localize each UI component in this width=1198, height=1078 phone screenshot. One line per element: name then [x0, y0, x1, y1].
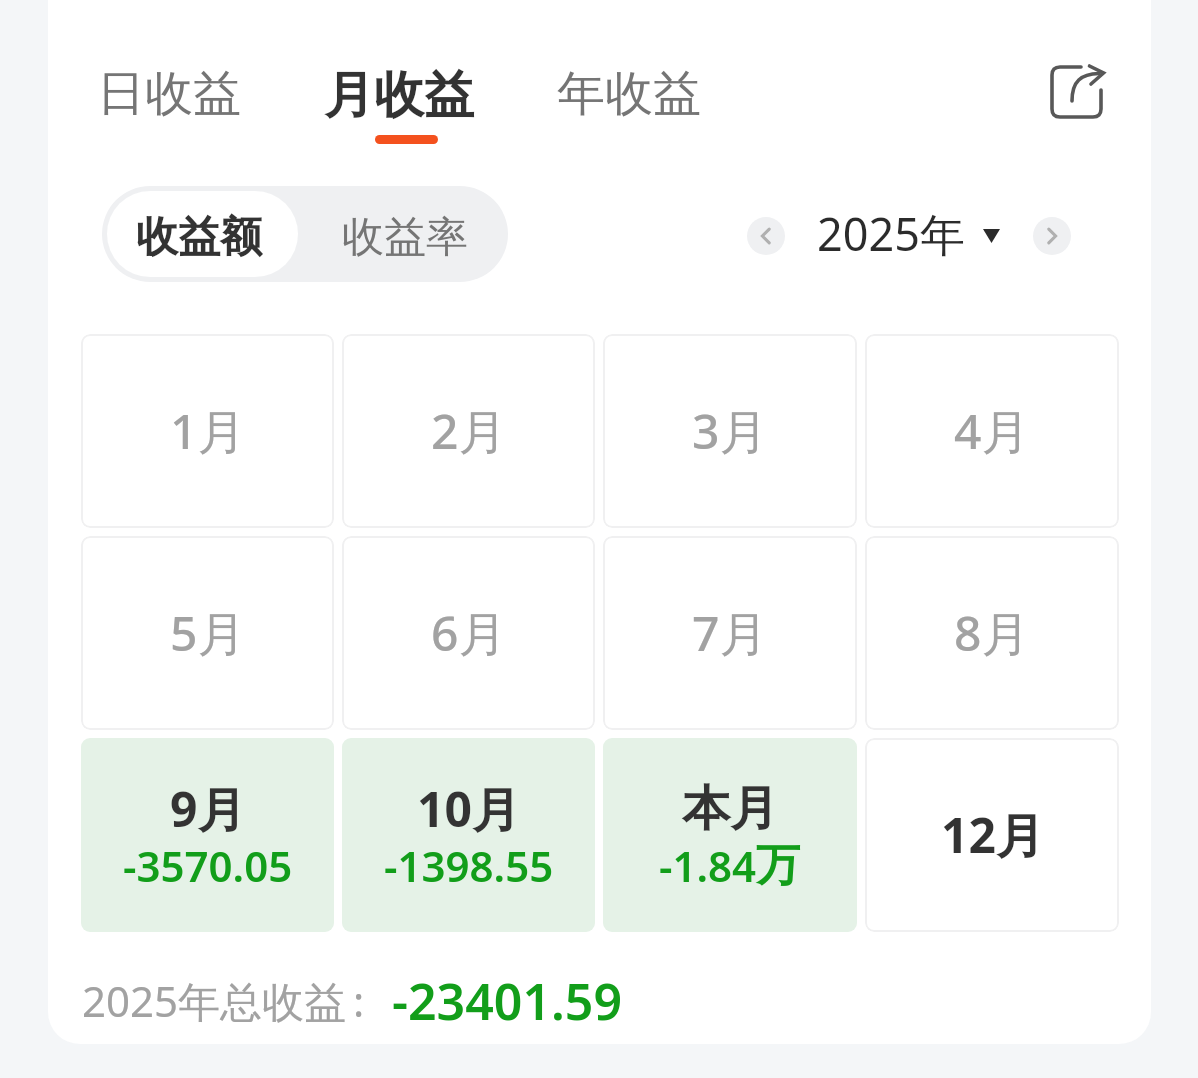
staticText: 1月: [170, 398, 246, 464]
button[interactable]: 10月: [342, 738, 595, 932]
staticText: 5月: [170, 600, 246, 666]
button[interactable]: 4月: [865, 334, 1119, 528]
staticText: -1398.55: [384, 837, 554, 894]
button[interactable]: 月收益: [314, 60, 484, 148]
button[interactable]: Share: [1038, 48, 1116, 126]
button[interactable]: 2025年: [817, 203, 1000, 258]
staticText: :: [353, 972, 365, 1029]
button[interactable]: 3月: [603, 334, 857, 528]
staticText: 8月: [954, 600, 1030, 666]
staticText: 2025年: [817, 203, 965, 258]
button[interactable]: 2025年总收益: [82, 961, 622, 1029]
button[interactable]: 12月: [865, 738, 1119, 932]
button[interactable]: 本月: [603, 738, 857, 932]
button[interactable]: 6月: [342, 536, 595, 730]
button[interactable]: 9月: [81, 738, 334, 932]
button[interactable]: 年收益: [547, 60, 711, 143]
button[interactable]: 日收益: [87, 60, 251, 143]
staticText: -1.84: [659, 837, 757, 894]
button[interactable]: 收益率: [303, 186, 508, 282]
staticText: 4月: [954, 398, 1030, 464]
staticText: -23401.59: [392, 967, 622, 1035]
button[interactable]: 收益额: [107, 191, 298, 277]
staticText: 日收益: [97, 64, 241, 124]
button[interactable]: 5月: [81, 536, 334, 730]
staticText: 2025年总收益: [82, 972, 347, 1029]
staticText: 10月: [417, 776, 520, 842]
staticText: 收益率: [342, 211, 468, 264]
staticText: 本月: [682, 779, 778, 839]
staticText: 年收益: [557, 64, 701, 124]
staticText: 7月: [692, 600, 768, 666]
staticText: 3月: [692, 398, 768, 464]
button[interactable]: Previous year: [738, 208, 793, 263]
staticText: 12月: [941, 802, 1044, 868]
staticText: 收益额: [136, 211, 262, 264]
staticText: 9月: [170, 776, 246, 842]
button[interactable]: 8月: [865, 536, 1119, 730]
button[interactable]: Next year: [1024, 208, 1079, 263]
button[interactable]: 7月: [603, 536, 857, 730]
button[interactable]: 2月: [342, 334, 595, 528]
staticText: 万: [756, 838, 800, 893]
staticText: 2月: [431, 398, 507, 464]
staticText: -3570.05: [123, 837, 293, 894]
staticText: 月收益: [324, 64, 474, 127]
button[interactable]: 1月: [81, 334, 334, 528]
staticText: 6月: [431, 600, 507, 666]
